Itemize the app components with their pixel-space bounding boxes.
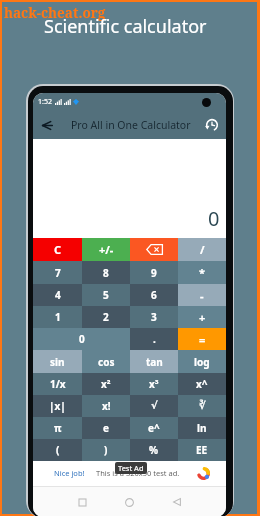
staticText: 0	[79, 332, 85, 346]
staticText: /	[200, 242, 205, 257]
button[interactable]: Backspace	[130, 238, 178, 261]
staticText: √	[151, 400, 158, 412]
button[interactable]: Back	[166, 491, 188, 513]
staticText: 9	[151, 266, 157, 280]
staticText: Nice job!	[54, 468, 85, 478]
button[interactable]: =	[178, 328, 226, 350]
staticText: x²	[101, 377, 111, 391]
button[interactable]: x³	[130, 373, 178, 395]
button[interactable]: e^	[130, 417, 178, 439]
staticText: π	[54, 421, 62, 435]
button[interactable]: 8	[82, 261, 130, 284]
button[interactable]: 4	[33, 284, 82, 306]
button[interactable]: -	[178, 284, 226, 306]
button[interactable]: 6	[130, 284, 178, 306]
staticText: ∛	[199, 400, 206, 412]
button[interactable]: ∛	[178, 395, 226, 417]
staticText: Scientific calculator	[44, 14, 207, 39]
staticText: sin	[50, 355, 65, 369]
staticText: tan	[146, 355, 163, 369]
button[interactable]: sin	[33, 350, 82, 373]
staticText: 0	[208, 205, 220, 232]
button[interactable]: .	[130, 328, 178, 350]
button[interactable]: 0	[33, 328, 130, 350]
staticText: %	[149, 443, 159, 457]
button[interactable]: 3	[130, 306, 178, 328]
button[interactable]: ln	[178, 417, 226, 439]
button[interactable]: C	[33, 238, 82, 261]
staticText: log	[194, 355, 210, 369]
button[interactable]: 9	[130, 261, 178, 284]
staticText: Pro All in One Calculator	[71, 118, 191, 132]
button[interactable]: π	[33, 417, 82, 439]
staticText: EE	[196, 443, 208, 457]
button[interactable]: |x|	[33, 395, 82, 417]
button[interactable]: tan	[130, 350, 178, 373]
button[interactable]: +	[178, 306, 226, 328]
button[interactable]: History	[198, 111, 226, 139]
button[interactable]: log	[178, 350, 226, 373]
staticText: x!	[102, 399, 111, 413]
button[interactable]: 5	[82, 284, 130, 306]
staticText: 4	[55, 288, 61, 302]
staticText: e	[103, 421, 109, 435]
staticText: (	[56, 443, 60, 457]
staticText: -	[200, 288, 204, 303]
staticText: 1/x	[50, 377, 66, 391]
button[interactable]: √	[130, 395, 178, 417]
staticText: )	[104, 443, 108, 457]
staticText: cos	[98, 355, 115, 369]
button[interactable]: 7	[33, 261, 82, 284]
staticText: e^	[148, 421, 160, 435]
button[interactable]: EE	[178, 439, 226, 461]
staticText: =	[199, 332, 206, 347]
button[interactable]: Back	[33, 111, 59, 139]
button[interactable]: e	[82, 417, 130, 439]
button[interactable]: 2	[82, 306, 130, 328]
staticText: *	[199, 265, 205, 280]
button[interactable]: /	[178, 238, 226, 261]
staticText: 7	[55, 266, 61, 280]
staticText: ln	[197, 421, 207, 435]
staticText: C	[54, 242, 62, 257]
button[interactable]: 1/x	[33, 373, 82, 395]
staticText: 2	[103, 310, 109, 324]
button[interactable]: *	[178, 261, 226, 284]
button[interactable]: x!	[82, 395, 130, 417]
staticText: +	[199, 310, 206, 325]
button[interactable]: %	[130, 439, 178, 461]
button[interactable]: 1	[33, 306, 82, 328]
button[interactable]: (	[33, 439, 82, 461]
staticText: 8	[103, 266, 109, 280]
staticText: +/-	[99, 242, 114, 257]
staticText: hack-cheat.org	[4, 4, 106, 22]
staticText: 1:52	[38, 97, 52, 107]
staticText: Test Ad	[118, 463, 144, 473]
button[interactable]: Home	[118, 491, 140, 513]
staticText: 5	[103, 288, 109, 302]
staticText: x³	[149, 377, 159, 391]
staticText: |x|	[49, 399, 66, 413]
staticText: 1	[55, 310, 61, 324]
staticText: This is a 320x50 test ad.	[96, 468, 180, 478]
staticText: 3	[151, 310, 157, 324]
button[interactable]: Recents	[71, 491, 93, 513]
button[interactable]: +/-	[82, 238, 130, 261]
staticText: 6	[151, 288, 157, 302]
button[interactable]: cos	[82, 350, 130, 373]
staticText: x^	[196, 377, 208, 391]
staticText: .	[153, 332, 156, 346]
button[interactable]: x²	[82, 373, 130, 395]
button[interactable]: )	[82, 439, 130, 461]
button[interactable]: x^	[178, 373, 226, 395]
